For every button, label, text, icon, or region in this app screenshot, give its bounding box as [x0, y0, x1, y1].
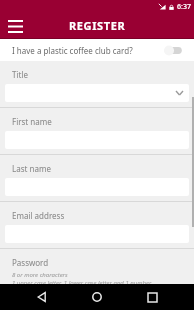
- staticText: 1 upper case letter, 1 lower case letter…: [12, 279, 152, 284]
- button[interactable]: Password: [0, 252, 194, 284]
- staticText: Last name: [12, 163, 51, 174]
- button[interactable]: Last name: [0, 158, 194, 202]
- staticText: Title: [12, 69, 28, 80]
- button[interactable]: First name: [0, 111, 194, 155]
- staticText: 8 or more characters: [12, 271, 68, 279]
- staticText: I have a plastic coffee club card?: [12, 45, 133, 56]
- staticText: REGISTER: [69, 18, 126, 33]
- button[interactable]: Email address: [0, 205, 194, 249]
- staticText: 6:37: [177, 2, 191, 12]
- button[interactable]: Title: [0, 64, 194, 108]
- button[interactable]: Open navigation menu: [4, 15, 26, 37]
- staticText: Password: [12, 257, 49, 268]
- button[interactable]: I have a plastic coffee club card?: [0, 39, 194, 61]
- button[interactable]: Home: [84, 284, 110, 310]
- button[interactable]: Back: [29, 284, 55, 310]
- button[interactable]: Recent apps: [139, 284, 165, 310]
- staticText: Email address: [12, 210, 65, 221]
- staticText: First name: [12, 116, 52, 127]
